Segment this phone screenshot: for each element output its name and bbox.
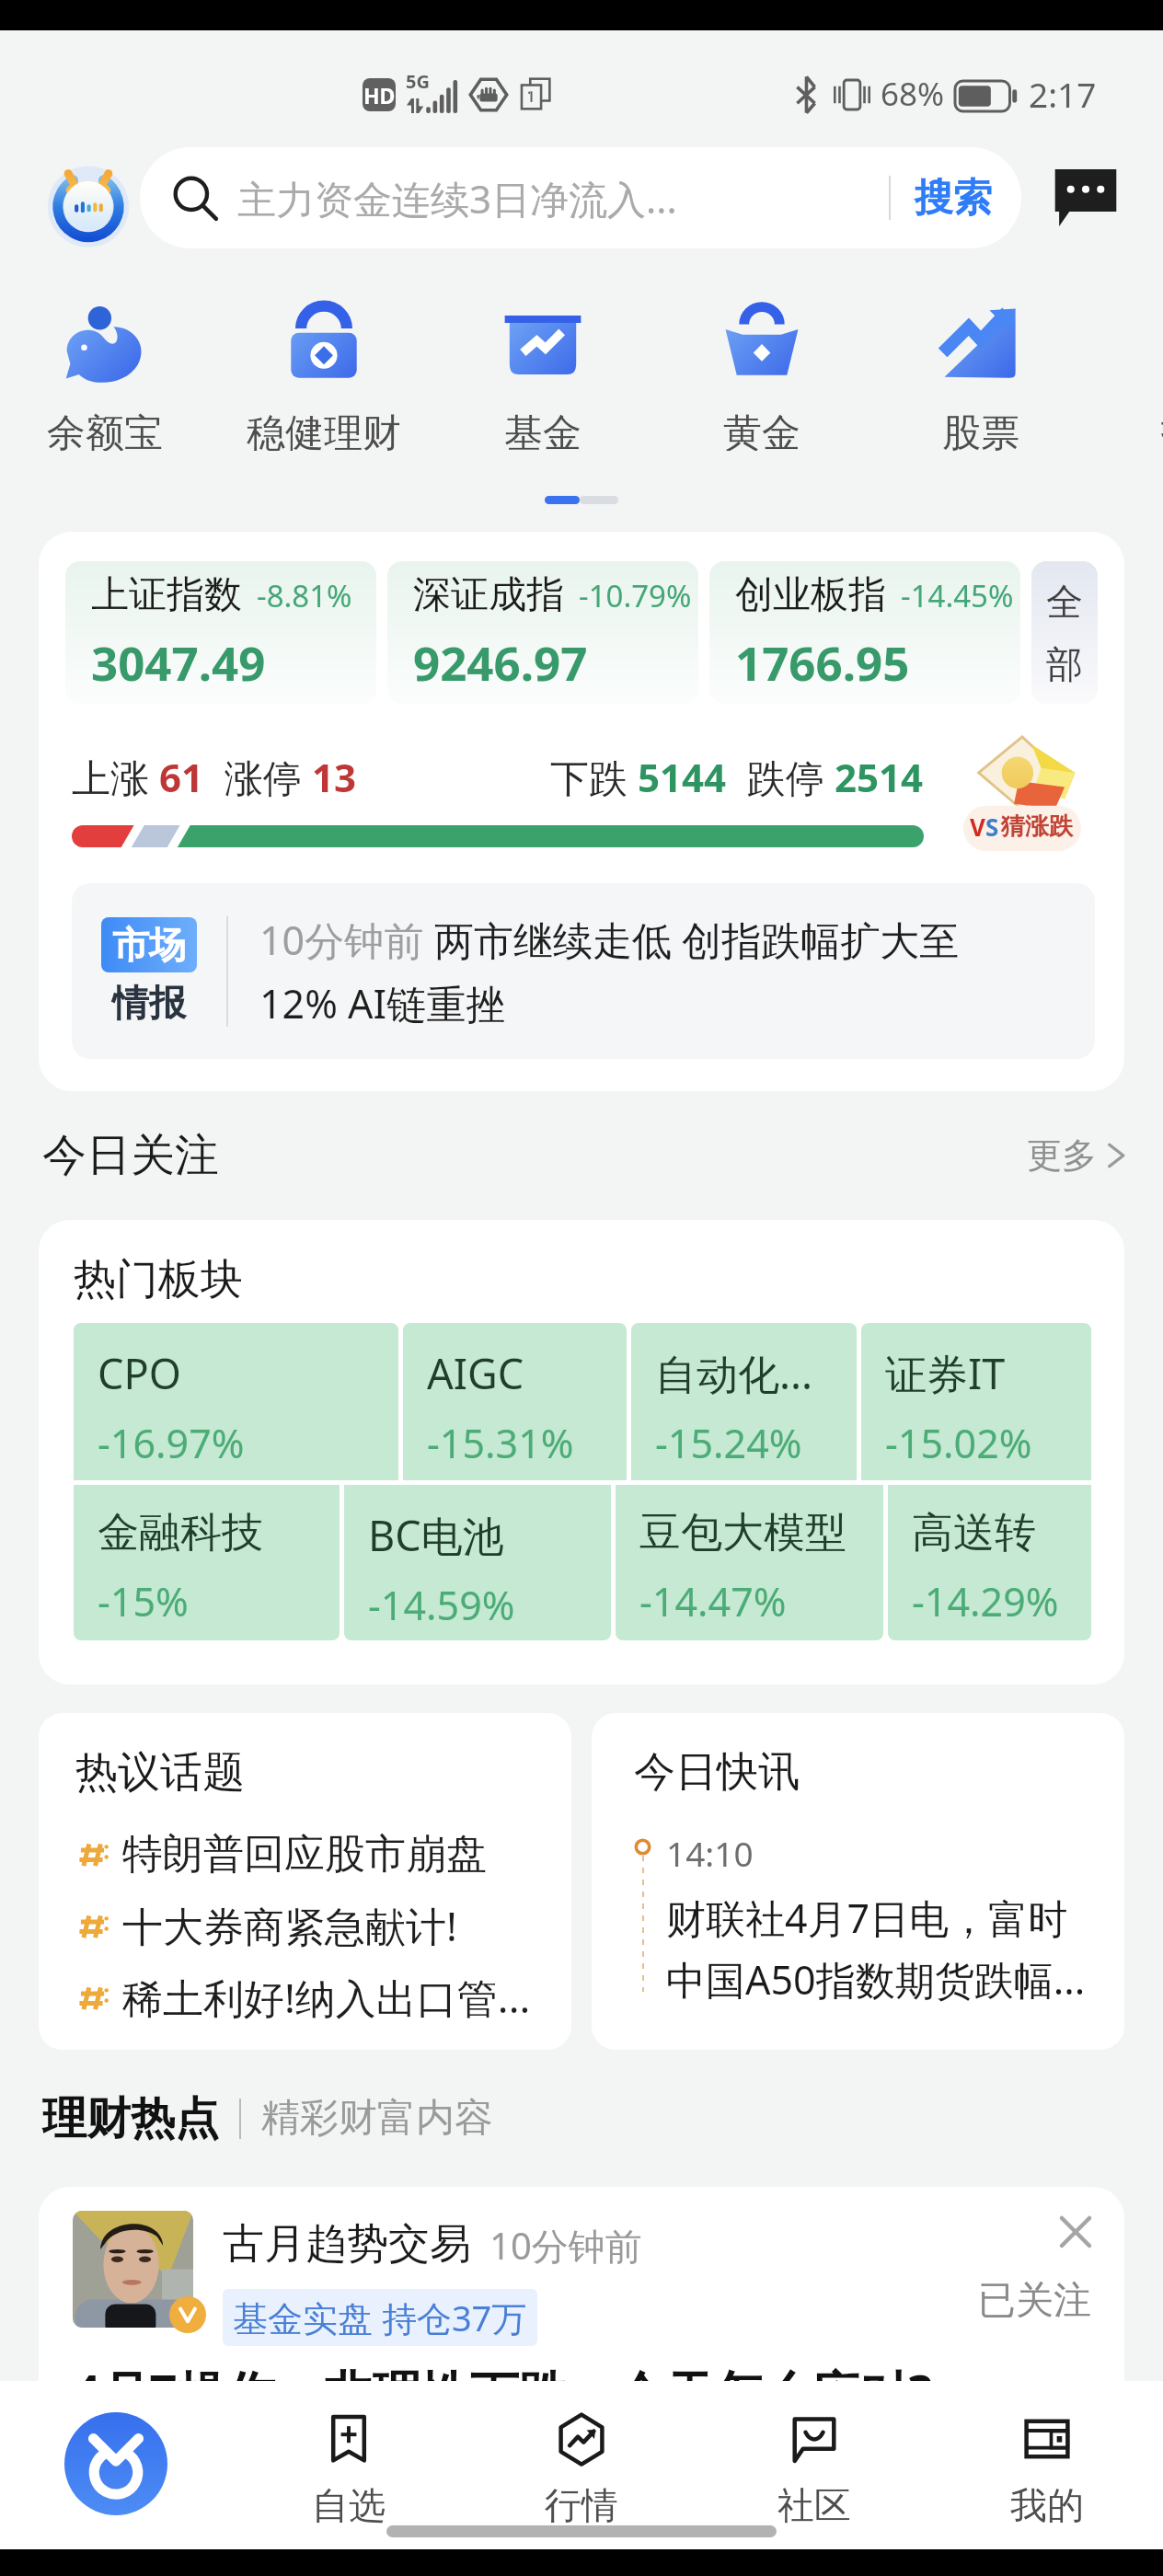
staticText: 情报 [112,980,186,1026]
staticText: 14:10 [666,1830,754,1876]
staticText: 古月趋势交易 [223,2218,471,2271]
button[interactable]: 今日关注 [42,1091,1128,1220]
button[interactable]: 理财热点 [0,2050,1163,2187]
button[interactable]: 古月趋势交易 [223,2211,973,2346]
staticText: -16.97% [98,1416,245,1470]
staticText: 全 [1046,579,1083,625]
button[interactable]: 金融科技 [74,1485,340,1640]
staticText: 涨停 [204,751,312,802]
button[interactable]: 全 [1031,561,1098,704]
staticText: 中国A50指数期货跌幅... [666,1952,1086,2007]
staticText: -15.24% [655,1416,802,1470]
staticText: -15% [98,1574,189,1628]
button[interactable]: 创业板指 [709,561,1020,704]
button[interactable]: 主力资金连续3日净流入... [140,147,1021,248]
button[interactable]: Messages [1043,155,1128,240]
staticText: 豆包大模型 [639,1507,846,1559]
staticText: 68% [881,72,945,116]
staticText: 2514 [835,751,924,802]
staticText: 证券IT [885,1345,1006,1401]
button[interactable]: Close [1054,2211,1097,2253]
staticText: 今日快讯 [634,1746,800,1799]
button[interactable]: 我的 [930,2381,1163,2549]
staticText: HD [363,81,396,109]
staticText: -10.79% [579,575,692,616]
staticText: BC电池 [368,1507,504,1563]
button[interactable]: CPO [74,1323,398,1480]
button[interactable]: AI assistant [39,148,138,247]
staticText: 猜涨跌 [1001,811,1073,842]
staticText: 热门板块 [74,1253,243,1306]
staticText: 上证指数 [91,571,242,619]
staticText: 余额宝 [47,409,163,451]
staticText: 下跌 [550,751,638,802]
staticText: 13 [312,751,357,802]
staticText: 理财热点 [42,2091,219,2146]
staticText: AIGC [427,1345,524,1401]
staticText: 金融科技 [98,1507,263,1559]
button[interactable]: Home [0,2381,232,2549]
button[interactable]: 投顾 [1090,267,1163,451]
staticText: 社区 [777,2482,851,2528]
button[interactable]: AIGC [403,1323,627,1480]
button[interactable]: 深证成指 [387,561,698,704]
staticText: 稀土利好!纳入出口管... [122,1970,531,2025]
staticText: 精彩财富内容 [261,2094,493,2143]
button[interactable]: 高送转 [888,1485,1091,1640]
staticText: 十大券商紧急献计! [122,1898,457,1953]
staticText: 跌停 [727,751,835,802]
button[interactable]: Guess rise or fall [963,733,1081,853]
staticText: 搜索 [915,174,992,223]
staticText: -8.81% [257,575,352,616]
staticText: -14.45% [901,575,1014,616]
staticText: 今日关注 [42,1128,219,1183]
button[interactable]: 自动化... [631,1323,857,1480]
staticText: 5144 [638,751,727,802]
staticText: 10分钟前 [489,2220,642,2271]
staticText: 5G [406,69,430,94]
button[interactable]: 上证指数 [65,561,376,704]
staticText: -14.59% [368,1578,515,1632]
staticText: 1766.95 [735,630,910,694]
button[interactable]: 社区 [697,2381,930,2549]
staticText: 行情 [545,2482,618,2528]
staticText: 深证成指 [413,571,564,619]
staticText: 主力资金连续3日净流入... [237,172,889,224]
staticText: 4月7操作：非理性下跌，今天怎么应对? [73,2359,932,2417]
button[interactable]: BC电池 [344,1485,611,1640]
staticText: 61 [159,751,204,802]
staticText: 创业板指 [735,571,886,619]
staticText: 2:17 [1029,71,1097,117]
button[interactable]: 已关注 [973,2268,1097,2334]
staticText: 9246.97 [413,630,588,694]
staticText: 自选 [312,2482,386,2528]
button[interactable]: 豆包大模型 [616,1485,883,1640]
button[interactable]: 行情 [465,2381,697,2549]
staticText: 特朗普回应股市崩盘 [122,1829,487,1880]
button[interactable]: 股票 [871,267,1090,451]
button[interactable]: 自选 [232,2381,465,2549]
staticText: -14.47% [639,1574,787,1628]
staticText: 10分钟前 [259,913,434,967]
button[interactable]: 证券IT [861,1323,1091,1480]
staticText: 市场 [112,922,186,968]
staticText: 12% AI链重挫 [259,976,506,1030]
button[interactable]: 热议话题 [39,1713,571,2050]
staticText: -15.02% [885,1416,1032,1470]
staticText: 部 [1046,641,1083,687]
staticText: 股票 [942,409,1019,451]
button[interactable]: 稳健理财 [214,267,433,451]
button[interactable]: 黄金 [652,267,871,451]
staticText: 财联社4月7日电，富时 [666,1891,1068,1945]
staticText: -14.29% [912,1574,1059,1628]
button[interactable]: 基金 [433,267,652,451]
staticText: 黄金 [723,409,800,451]
staticText: 高送转 [912,1507,1036,1559]
staticText: 已关注 [978,2277,1091,2325]
button[interactable]: 余额宝 [0,267,214,451]
staticText: 基金实盘 持仓37万 [233,2294,527,2341]
staticText: 3047.49 [91,630,266,694]
button[interactable]: 市场 [72,883,1095,1059]
button[interactable]: 今日快讯 [592,1713,1124,2050]
staticText: 自动化... [655,1345,813,1401]
